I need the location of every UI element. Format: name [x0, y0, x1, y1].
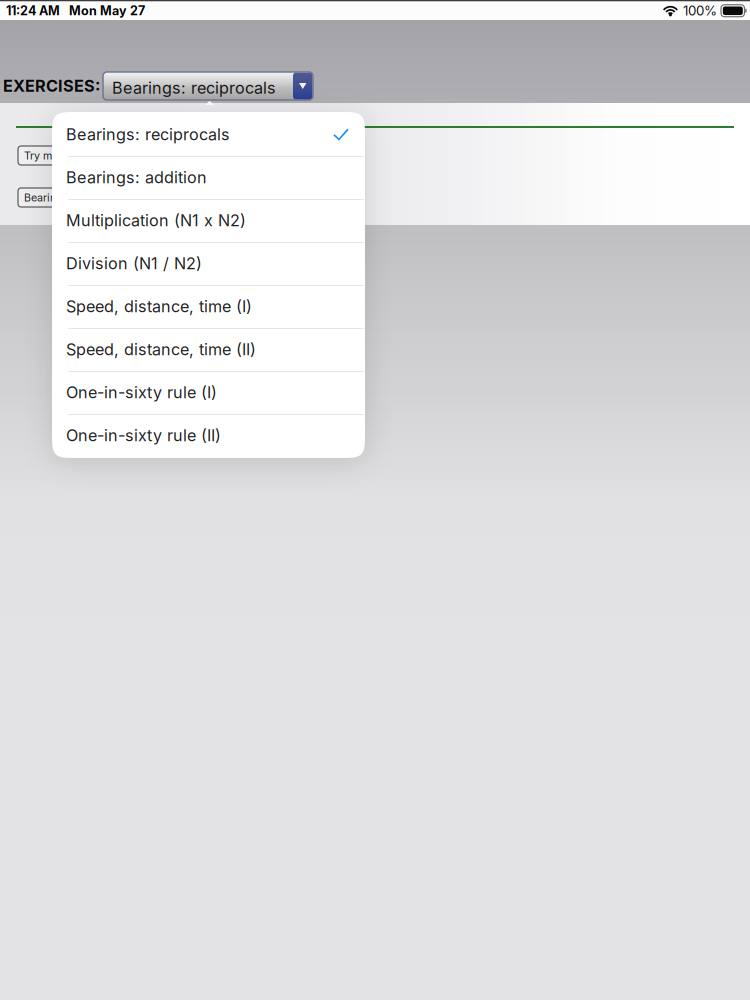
staticText: Bearings [24, 191, 69, 204]
staticText: 11:24 AM [6, 3, 60, 18]
button[interactable]: Bearings: reciprocals [103, 72, 313, 100]
staticText: Speed, distance, time (II) [66, 340, 256, 359]
button[interactable]: Try me [18, 146, 64, 165]
staticText: One-in-sixty rule (II) [66, 426, 221, 445]
button[interactable]: Speed, distance, time (II) [52, 328, 365, 371]
staticText: Bearings: addition [66, 168, 207, 187]
staticText: Speed, distance, time (I) [66, 297, 252, 316]
staticText: Division (N1 / N2) [66, 254, 202, 273]
button[interactable]: One-in-sixty rule (I) [52, 371, 365, 414]
button[interactable]: One-in-sixty rule (II) [52, 414, 365, 457]
button[interactable]: Speed, distance, time (I) [52, 285, 365, 328]
button[interactable]: Bearings: reciprocals [52, 113, 365, 156]
button[interactable]: Multiplication (N1 x N2) [52, 199, 365, 242]
staticText: Bearings: reciprocals [112, 78, 276, 97]
button[interactable]: Bearings: addition [52, 156, 365, 199]
staticText: Try me [24, 149, 58, 162]
staticText: Bearings: reciprocals [66, 125, 230, 144]
button[interactable]: Bearings [18, 188, 75, 207]
button[interactable]: Division (N1 / N2) [52, 242, 365, 285]
staticText: EXERCISES: [3, 76, 100, 96]
staticText: Multiplication (N1 x N2) [66, 211, 246, 230]
staticText: One-in-sixty rule (I) [66, 383, 217, 402]
staticText: Mon May 27 [69, 3, 145, 18]
staticText: 100% [683, 3, 717, 19]
